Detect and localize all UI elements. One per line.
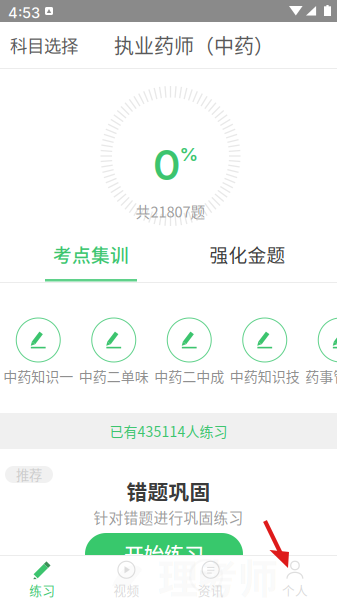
staticText: 错题巩固	[126, 476, 210, 506]
button[interactable]: 考点集训	[7, 228, 175, 280]
staticText: 个人	[282, 581, 308, 599]
button[interactable]: 练习	[0, 555, 84, 600]
button[interactable]: 执业药师（中药）	[114, 22, 244, 68]
button[interactable]: 中药二单味	[76, 316, 151, 386]
staticText: 4:53	[8, 4, 40, 22]
button[interactable]: 药事管理与	[302, 316, 337, 386]
staticText: 强化金题	[210, 240, 286, 267]
staticText: 推荐	[16, 465, 42, 484]
staticText: 考点集训	[53, 240, 129, 267]
staticText: 针对错题进行巩固练习	[93, 506, 243, 528]
staticText: %	[179, 143, 198, 166]
button[interactable]: 科目选择	[0, 22, 74, 68]
staticText: 中药知识技	[230, 366, 300, 386]
staticText: 药事管理与	[305, 366, 337, 386]
button[interactable]: 视频	[84, 555, 168, 600]
staticText: 中药知识一	[3, 366, 73, 386]
staticText: 0	[153, 140, 179, 190]
staticText: 练习	[29, 581, 55, 599]
button[interactable]: 中药二中成	[151, 316, 227, 386]
staticText: 共21807题	[135, 200, 205, 222]
button[interactable]: 个人	[253, 555, 337, 600]
staticText: 开始练习	[124, 539, 204, 568]
staticText: 理考师	[158, 547, 278, 600]
staticText: 已有435114人练习	[109, 421, 227, 441]
staticText: 中药二中成	[154, 366, 224, 386]
staticText: 科目选择	[10, 32, 78, 58]
staticText: 执业药师（中药）	[114, 30, 274, 59]
button[interactable]: 中药知识技	[227, 316, 302, 386]
staticText: 中药二单味	[79, 366, 149, 386]
button[interactable]: 强化金题	[164, 228, 332, 280]
button[interactable]: 开始练习	[85, 533, 243, 575]
staticText: 资讯	[198, 581, 224, 599]
staticText: 视频	[113, 581, 139, 599]
button[interactable]: 资讯	[168, 555, 253, 600]
button[interactable]: 中药知识一	[0, 316, 76, 386]
